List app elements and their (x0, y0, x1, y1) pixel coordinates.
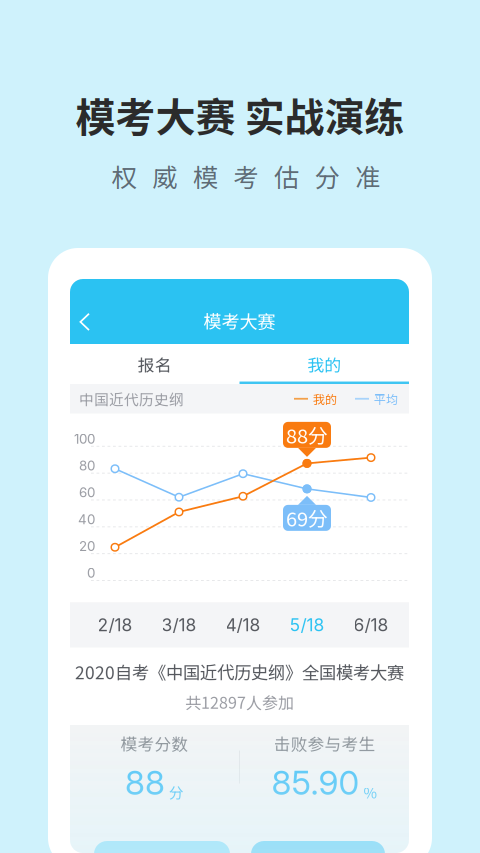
button[interactable]: 6/18 (339, 602, 403, 647)
staticText: 分 (169, 781, 184, 803)
staticText: 6/18 (353, 614, 388, 635)
staticText: % (363, 781, 377, 803)
staticText: 模考大赛 (203, 307, 275, 334)
button[interactable]: 4/18 (211, 602, 275, 647)
staticText: 40 (78, 511, 95, 527)
staticText: 4/18 (225, 614, 260, 635)
staticText: 85.90 (271, 762, 359, 803)
staticText: 0 (87, 565, 95, 581)
staticText: 中国近代历史纲 (79, 388, 184, 409)
button[interactable]: 查看解析 (94, 841, 230, 853)
button[interactable]: 我的 (239, 344, 409, 384)
staticText: 我的 (313, 390, 337, 407)
staticText: 权威模考估分准 (112, 158, 380, 194)
staticText: 80 (79, 458, 95, 474)
staticText: 共12897人参加 (185, 690, 294, 713)
staticText: 100 (74, 431, 95, 447)
staticText: 我的 (307, 352, 341, 376)
staticText: 2020自考《中国近代历史纲》全国模考大赛 (75, 659, 404, 684)
staticText: 69分 (286, 503, 328, 532)
button[interactable]: 5/18 (275, 602, 339, 647)
staticText: 模考分数 (120, 731, 188, 755)
staticText: 3/18 (161, 614, 196, 635)
button[interactable]: 2/18 (83, 602, 147, 647)
staticText: 5/18 (289, 614, 324, 635)
button[interactable]: 去做题 (251, 841, 385, 853)
staticText: 平均 (374, 390, 398, 407)
staticText: 2/18 (97, 614, 132, 635)
staticText: 击败参与考生 (273, 731, 375, 755)
staticText: 60 (79, 484, 95, 500)
button[interactable]: 3/18 (147, 602, 211, 647)
staticText: 模考大赛 实战演练 (75, 86, 404, 144)
staticText: 20 (79, 538, 95, 554)
button[interactable]: 报名 (70, 344, 239, 384)
staticText: 88分 (286, 420, 328, 449)
staticText: 88 (125, 762, 165, 803)
button[interactable]: 返回 (70, 279, 110, 344)
staticText: 报名 (138, 352, 172, 376)
